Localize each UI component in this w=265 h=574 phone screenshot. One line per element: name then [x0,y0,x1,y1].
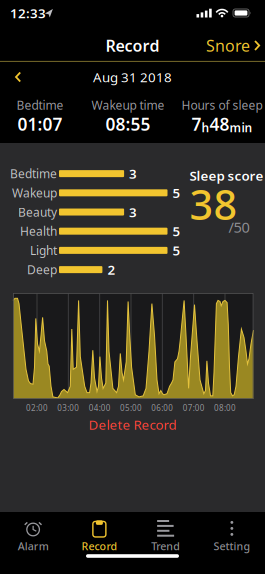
staticText: Wakeup time [91,97,164,113]
staticText: 3 [129,203,137,221]
staticText: Snore [206,35,250,56]
button[interactable]: Alarm [0,512,66,574]
staticText: 2 [107,261,115,278]
button[interactable]: Trend [132,512,199,574]
staticText: 08:55 [105,112,150,135]
staticText: 02:00 [26,403,48,413]
staticText: 06:00 [151,403,173,413]
staticText: 5 [172,184,180,202]
staticText: Wakeup [12,185,57,201]
button[interactable]: Previous day [7,64,29,90]
staticText: Health [20,223,57,239]
staticText: Beauty [18,204,57,220]
staticText: h [201,120,209,135]
staticText: 01:07 [17,112,62,135]
staticText: 5 [172,222,180,240]
staticText: Hours of sleep [181,97,262,113]
staticText: 08:00 [214,403,236,413]
staticText: Record [81,539,117,553]
staticText: 05:00 [120,403,142,413]
staticText: Setting [213,539,250,553]
staticText: 12:33 [10,4,46,22]
staticText: min [229,120,252,135]
staticText: Aug 31 2018 [93,68,172,86]
staticText: 48 [209,112,229,135]
staticText: 7 [191,112,201,135]
staticText: Trend [151,539,180,553]
button[interactable]: Setting [199,512,265,574]
button[interactable]: Snore [206,35,260,56]
staticText: 3 [129,165,137,182]
staticText: Record [105,35,159,56]
staticText: Sleep score [189,167,263,184]
staticText: Alarm [18,539,49,553]
staticText: Bedtime [16,97,63,113]
button[interactable]: Record [66,512,132,574]
button[interactable]: Delete Record [78,412,186,437]
staticText: 5 [172,241,180,259]
staticText: Deep [27,262,57,277]
staticText: Light [30,242,57,258]
staticText: 38 [189,177,237,231]
staticText: 04:00 [89,403,111,413]
staticText: 03:00 [57,403,79,413]
staticText: Bedtime [10,166,57,181]
staticText: Delete Record [88,416,176,433]
staticText: /50 [228,217,249,237]
staticText: 07:00 [183,403,205,413]
